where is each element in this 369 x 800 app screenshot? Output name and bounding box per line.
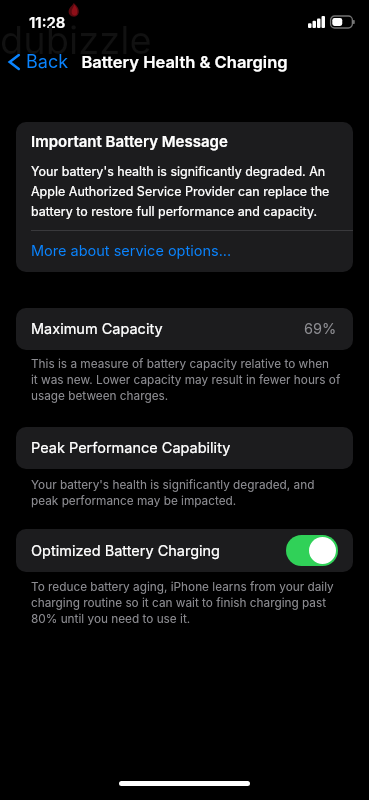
staticText: More about service options... — [31, 242, 232, 260]
staticText: Important Battery Message — [31, 132, 228, 151]
staticText: dubizzle — [0, 17, 152, 63]
staticText: This is a measure of battery capacity re… — [31, 355, 341, 403]
staticText: 11:28 — [29, 13, 66, 31]
button[interactable]: Back — [0, 46, 77, 78]
staticText: Maximum Capacity — [31, 320, 163, 338]
staticText: Your battery's health is significantly d… — [31, 476, 315, 508]
staticText: To reduce battery aging, iPhone learns f… — [31, 578, 334, 626]
staticText: Peak Performance Capability — [31, 439, 231, 457]
staticText: Battery Health & Charging — [81, 52, 288, 72]
staticText: 69% — [304, 320, 337, 338]
staticText: Optimized Battery Charging — [31, 542, 221, 560]
button[interactable]: Optimized Battery Charging toggle — [286, 535, 338, 566]
staticText: Your battery's health is significantly d… — [31, 160, 339, 220]
button[interactable]: Optimized Battery Charging — [16, 529, 353, 572]
button[interactable]: Peak Performance Capability — [16, 427, 353, 469]
button[interactable]: Maximum Capacity — [16, 308, 353, 350]
staticText: Back — [26, 51, 69, 73]
button[interactable]: More about service options... — [16, 231, 353, 272]
